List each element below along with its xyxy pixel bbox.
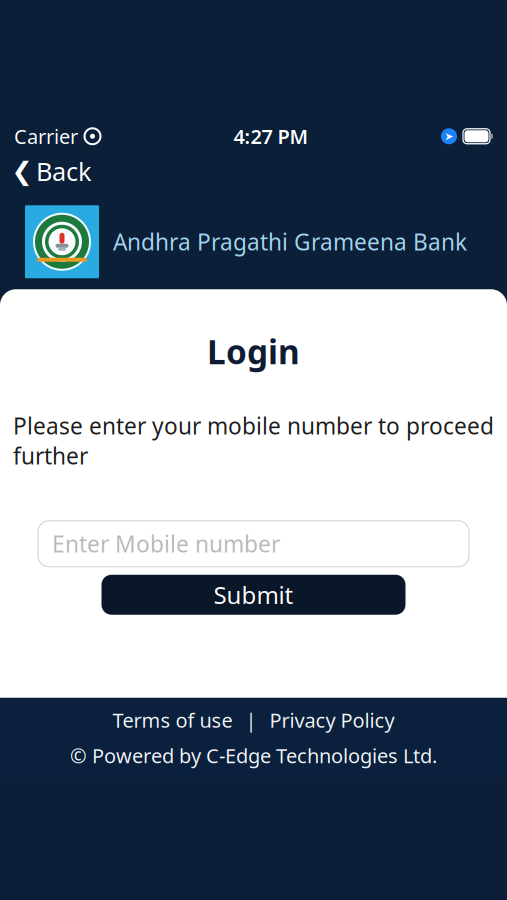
staticText: Login <box>207 329 300 374</box>
staticText: Andhra Pragathi Grameena Bank <box>113 227 467 257</box>
staticText: 4:27 PM <box>233 123 308 150</box>
staticText: Terms of use <box>112 707 232 733</box>
staticText: Back <box>36 154 92 188</box>
staticText: | <box>245 707 256 733</box>
staticText: Privacy Policy <box>269 707 394 733</box>
staticText: Enter Mobile number <box>52 529 280 559</box>
staticText: Please enter your mobile number to proce… <box>13 410 494 471</box>
button[interactable]: ❮ <box>0 146 108 196</box>
staticText: Carrier <box>14 123 78 150</box>
staticText: Submit <box>213 579 293 611</box>
staticText: © Powered by C-Edge Technologies Ltd. <box>70 742 437 769</box>
button[interactable]: Submit <box>101 575 405 615</box>
button[interactable]: Privacy Policy <box>269 707 394 733</box>
button[interactable]: Terms of use <box>112 707 232 733</box>
staticText: ➤ <box>444 130 453 142</box>
staticText: ❮ <box>11 157 32 186</box>
